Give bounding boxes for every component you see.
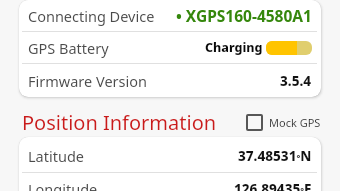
staticText: Latitude — [28, 146, 84, 166]
staticText: Mock GPS — [269, 115, 321, 130]
button[interactable]: Connecting Device — [19, 0, 321, 31]
button[interactable]: Mock GPS checkbox — [246, 114, 321, 131]
button[interactable]: Latitude — [19, 140, 321, 172]
button[interactable]: Longitude — [19, 173, 321, 191]
staticText: • XGPS160-4580A1 — [176, 5, 312, 26]
staticText: Connecting Device — [28, 6, 155, 26]
staticText: 3.5.4 — [280, 72, 312, 90]
staticText: 37.48531°N — [238, 147, 312, 165]
staticText: GPS Battery — [28, 38, 109, 58]
button[interactable]: GPS Battery — [19, 32, 321, 63]
staticText: Charging — [205, 39, 263, 56]
staticText: Position Information — [22, 109, 217, 135]
button[interactable]: Firmware Version — [19, 64, 321, 97]
staticText: 126.89435°E — [234, 180, 312, 191]
staticText: Firmware Version — [28, 71, 147, 91]
staticText: Longitude — [28, 179, 98, 191]
